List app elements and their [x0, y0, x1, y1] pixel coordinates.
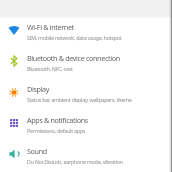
- button[interactable]: Sound: [0, 140, 172, 171]
- button[interactable]: Apps & notifications: [0, 109, 172, 140]
- button[interactable]: Wi-Fi & internet: [0, 16, 172, 47]
- staticText: Apps & notifications: [27, 115, 88, 125]
- staticText: SIM, mobile network, data usage, hotspot: [27, 34, 122, 41]
- button[interactable]: Bluetooth & device connection: [0, 47, 172, 78]
- button[interactable]: Display: [0, 78, 172, 109]
- staticText: Sound: [27, 146, 47, 156]
- staticText: Status bar, ambient display, wallpapers,…: [27, 96, 132, 103]
- staticText: Bluetooth, NFC, cast: [27, 65, 73, 72]
- staticText: Bluetooth & device connection: [27, 53, 120, 63]
- staticText: Permissions, default apps: [27, 127, 86, 134]
- staticText: Do Not Disturb, earphone mode, vibration: [27, 158, 123, 165]
- staticText: Display: [27, 84, 50, 94]
- staticText: Wi-Fi & internet: [27, 22, 74, 32]
